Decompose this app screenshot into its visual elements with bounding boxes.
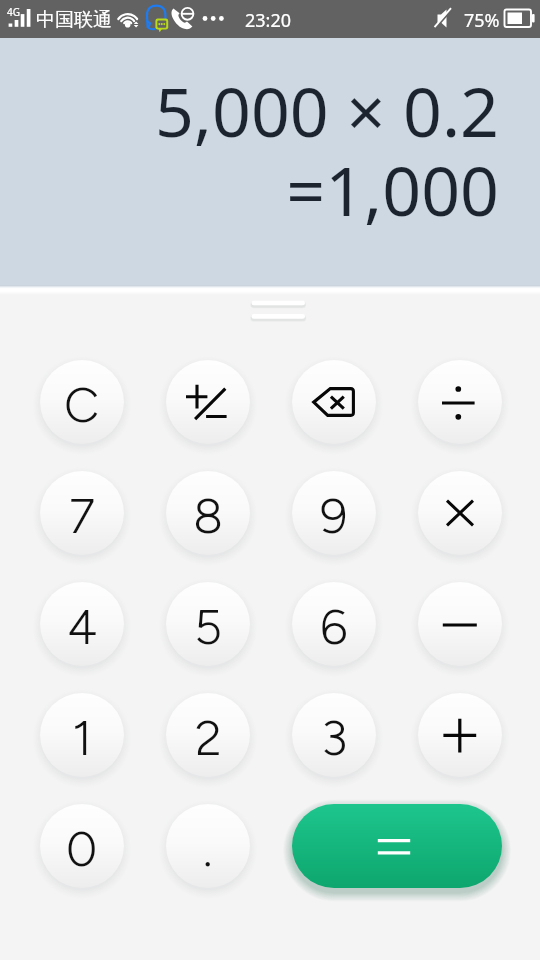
staticText: 2 xyxy=(195,708,222,767)
button[interactable]: 8 xyxy=(152,457,264,569)
button[interactable]: 0 xyxy=(26,790,138,902)
staticText: 4G xyxy=(7,5,20,19)
button[interactable]: Equals xyxy=(280,792,514,900)
staticText: 3 xyxy=(321,708,348,767)
staticText: 5 xyxy=(194,597,223,656)
button[interactable]: 7 xyxy=(26,457,138,569)
staticText: 1 xyxy=(72,708,93,767)
staticText: . xyxy=(203,819,213,878)
staticText: 6 xyxy=(320,597,348,656)
button[interactable]: 5 xyxy=(152,568,264,680)
staticText: 7 xyxy=(69,486,95,545)
staticText: 9 xyxy=(320,486,348,545)
button[interactable]: 3 xyxy=(278,679,390,791)
staticText: 8 xyxy=(193,486,224,545)
button[interactable]: 1 xyxy=(26,679,138,791)
staticText: C xyxy=(64,375,100,434)
button[interactable]: 9 xyxy=(278,457,390,569)
staticText: 4 xyxy=(67,597,98,656)
button[interactable] xyxy=(404,568,516,680)
staticText: 0 xyxy=(66,819,98,878)
button[interactable] xyxy=(404,346,516,458)
staticText: 23:20 xyxy=(245,8,292,33)
button[interactable] xyxy=(152,346,264,458)
button[interactable] xyxy=(404,679,516,791)
button[interactable] xyxy=(404,457,516,569)
button[interactable]: . xyxy=(152,790,264,902)
button[interactable] xyxy=(278,346,390,458)
button[interactable]: 2 xyxy=(152,679,264,791)
staticText: 中国联通 xyxy=(36,8,112,32)
staticText: 75% xyxy=(464,8,500,33)
button[interactable]: 4 xyxy=(26,568,138,680)
staticText: 5,000 × 0.2 =1,000 xyxy=(0,64,499,236)
button[interactable]: C xyxy=(26,346,138,458)
button[interactable]: 6 xyxy=(278,568,390,680)
